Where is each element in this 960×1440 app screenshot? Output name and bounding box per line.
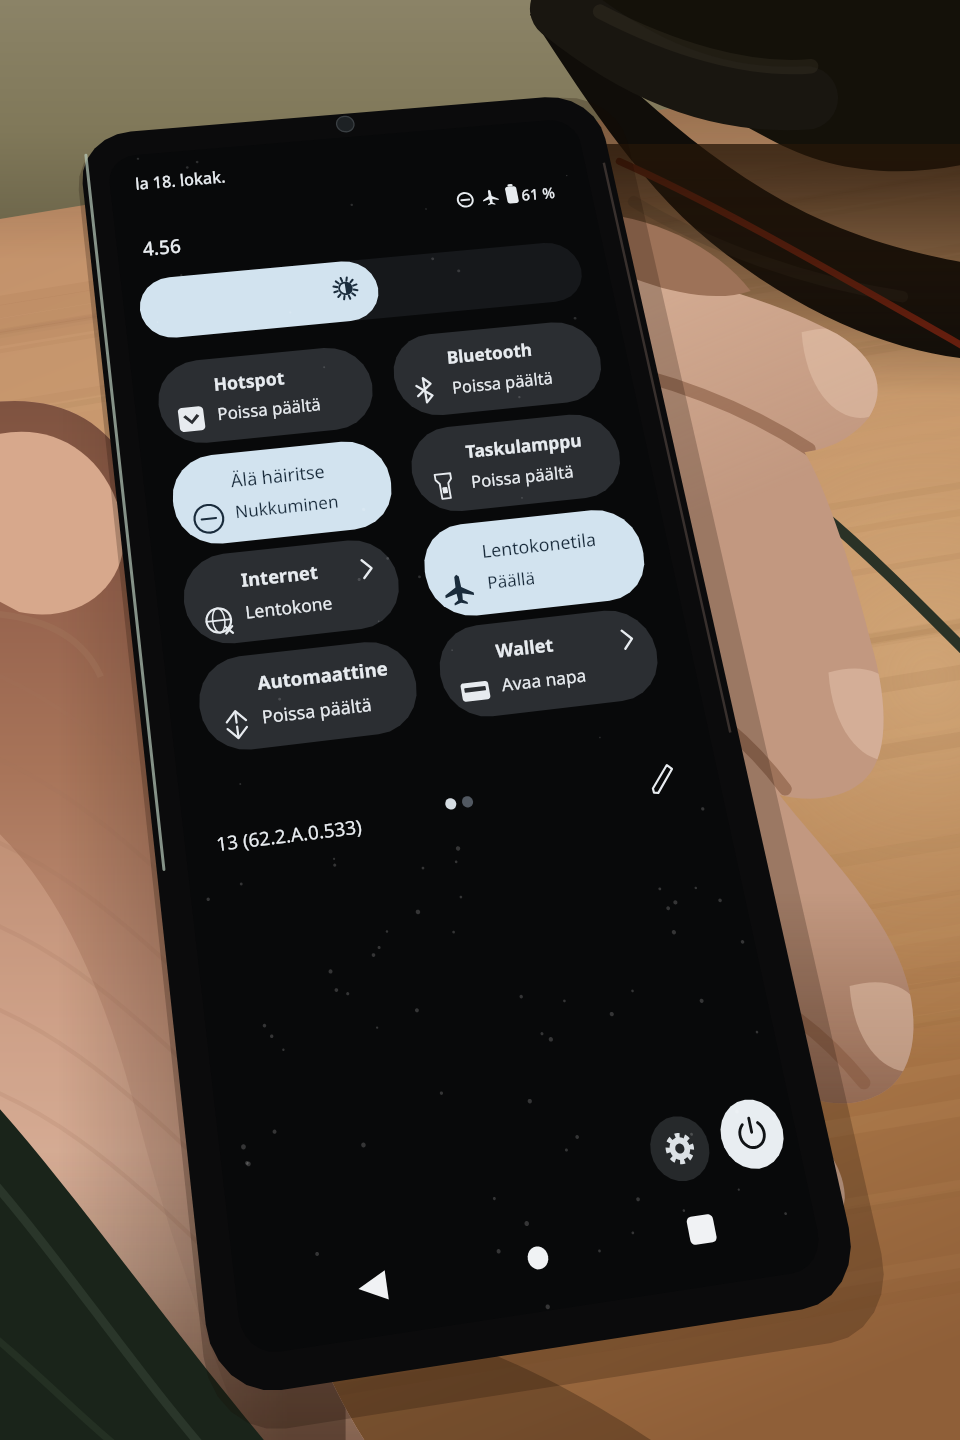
button[interactable]: Phone quick settings xyxy=(0,0,960,1440)
